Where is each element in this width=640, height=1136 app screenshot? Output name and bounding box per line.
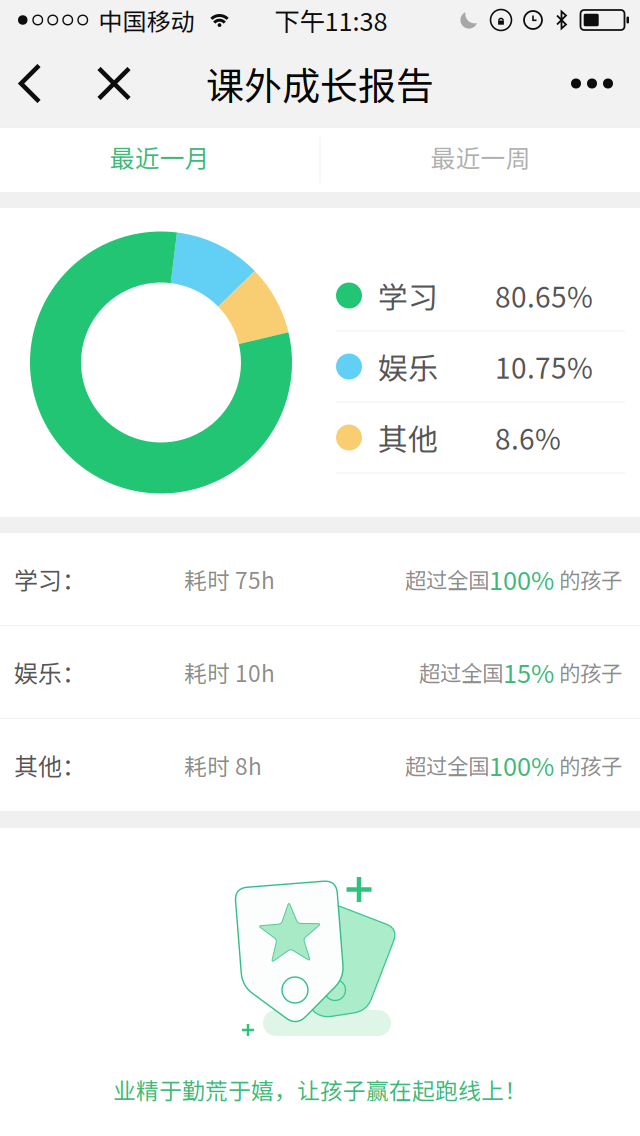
staticText: 下午11:38 (274, 2, 387, 38)
staticText: 娱乐： (14, 655, 86, 689)
staticText: 耗时 10h (184, 656, 275, 688)
staticText: 的孩子 (554, 564, 622, 594)
staticText: 业精于勤荒于嬉，让孩子赢在起跑线上！ (113, 1073, 527, 1106)
staticText: 课外成长报告 (206, 56, 434, 111)
staticText: 80.65% (495, 275, 593, 316)
staticText: 8.6% (495, 417, 561, 458)
staticText: 超过全国 (419, 657, 503, 687)
staticText: 超过全国 (405, 750, 489, 780)
staticText: 耗时 8h (184, 749, 262, 781)
staticText: 100% (489, 747, 554, 783)
staticText: 最近一周 (430, 139, 530, 175)
staticText: 100% (489, 561, 554, 597)
button[interactable]: 返回 (0, 40, 81, 127)
staticText: 学习 (378, 274, 438, 317)
staticText: 学习： (14, 562, 86, 596)
button[interactable]: 最近一周 (321, 128, 640, 192)
button[interactable]: 关闭 (81, 40, 147, 127)
staticText: 娱乐 (378, 345, 438, 388)
button[interactable]: 更多 (549, 40, 640, 127)
staticText: 超过全国 (405, 564, 489, 594)
staticText: 15% (503, 654, 554, 690)
staticText: 其他： (14, 748, 86, 782)
staticText: 的孩子 (554, 750, 622, 780)
staticText: 耗时 75h (184, 563, 275, 595)
button[interactable]: 最近一月 (0, 128, 319, 192)
staticText: 10.75% (495, 346, 593, 387)
staticText: 最近一月 (110, 139, 210, 175)
staticText: 其他 (378, 416, 438, 459)
staticText: 中国移动 (98, 3, 194, 37)
staticText: 的孩子 (554, 657, 622, 687)
